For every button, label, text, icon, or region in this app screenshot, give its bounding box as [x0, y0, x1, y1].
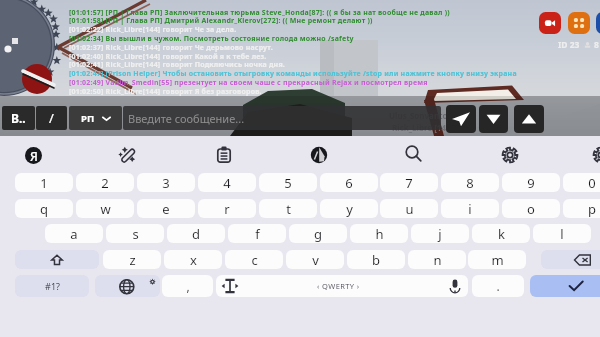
- staticText: r: [224, 200, 230, 218]
- button[interactable]: Введите сообщение...: [123, 106, 441, 130]
- button[interactable]: o: [502, 199, 560, 218]
- button[interactable]: Space: [216, 275, 468, 297]
- button[interactable]: 7: [380, 173, 438, 192]
- button[interactable]: 5: [259, 173, 317, 192]
- button[interactable]: m: [468, 250, 526, 269]
- button[interactable]: Scroll up: [514, 105, 544, 133]
- button[interactable]: n: [408, 250, 466, 269]
- button[interactable]: 2: [76, 173, 134, 192]
- button[interactable]: l: [533, 224, 591, 243]
- button[interactable]: g: [289, 224, 347, 243]
- staticText: d: [192, 225, 200, 243]
- staticText: f: [255, 225, 260, 243]
- staticText: n: [433, 251, 442, 269]
- button[interactable]: i: [441, 199, 499, 218]
- button[interactable]: 4: [198, 173, 256, 192]
- staticText: 9: [527, 174, 535, 192]
- staticText: 5: [284, 174, 292, 192]
- button[interactable]: Yandex keyboard: [17, 139, 49, 171]
- button[interactable]: Clipboard: [208, 139, 240, 171]
- button[interactable]: f: [228, 224, 286, 243]
- staticText: o: [527, 200, 535, 218]
- button[interactable]: Menu: [568, 12, 590, 34]
- button[interactable]: 6: [320, 173, 378, 192]
- button[interactable]: q: [15, 199, 73, 218]
- staticText: #1?: [45, 280, 60, 292]
- staticText: u: [405, 200, 414, 218]
- button[interactable]: Enter: [530, 275, 600, 297]
- staticText: [01:01:57] [РП | Глава РП] Заключительна…: [69, 8, 450, 18]
- button[interactable]: Scroll down: [479, 105, 508, 133]
- button[interactable]: u: [380, 199, 438, 218]
- staticText: [01:02:47] [Prison Helper] Чтобы останов…: [69, 69, 517, 79]
- button[interactable]: e: [137, 199, 195, 218]
- staticText: t: [286, 200, 291, 218]
- staticText: [01:02:40] Rick_Libre[144] говорит Какой…: [69, 52, 267, 62]
- button[interactable]: j: [411, 224, 469, 243]
- button[interactable]: Alice assistant: [303, 139, 335, 171]
- button[interactable]: k: [472, 224, 530, 243]
- staticText: [01:02:22] Rick_Libre[144] говорит Че за…: [69, 25, 237, 35]
- button[interactable]: 9: [502, 173, 560, 192]
- button[interactable]: s: [106, 224, 164, 243]
- button[interactable]: 1: [15, 173, 73, 192]
- button[interactable]: t: [259, 199, 317, 218]
- staticText: c: [251, 251, 258, 269]
- staticText: [01:02:50] Rick_Libre[144] говорит Я без…: [69, 87, 262, 97]
- button[interactable]: /: [36, 106, 67, 130]
- staticText: e: [162, 200, 170, 218]
- button[interactable]: b: [347, 250, 405, 269]
- button[interactable]: Change language: [95, 275, 160, 297]
- button[interactable]: Shift: [15, 250, 99, 269]
- button[interactable]: 8: [441, 173, 499, 192]
- staticText: v: [312, 251, 319, 269]
- button[interactable]: Settings: [494, 139, 526, 171]
- button[interactable]: r: [198, 199, 256, 218]
- staticText: Rick_Libre [144]: [392, 122, 454, 133]
- staticText: w: [100, 200, 111, 218]
- staticText: g: [314, 225, 322, 243]
- staticText: k: [498, 225, 505, 243]
- staticText: ,: [186, 278, 190, 294]
- staticText: a: [70, 225, 78, 243]
- button[interactable]: В..: [2, 106, 35, 130]
- button[interactable]: 3: [137, 173, 195, 192]
- button[interactable]: c: [225, 250, 283, 269]
- button[interactable]: Send: [446, 105, 476, 133]
- button[interactable]: Magic wand: [111, 139, 143, 171]
- staticText: j: [438, 225, 442, 243]
- staticText: y: [346, 200, 353, 218]
- button[interactable]: y: [320, 199, 378, 218]
- button[interactable]: ,: [162, 275, 213, 297]
- button[interactable]: a: [45, 224, 103, 243]
- button[interactable]: РП: [69, 106, 122, 130]
- button[interactable]: More: [585, 139, 600, 171]
- staticText: b: [372, 251, 380, 269]
- staticText: q: [40, 200, 48, 218]
- staticText: z: [129, 251, 136, 269]
- staticText: i: [468, 200, 472, 218]
- button[interactable]: w: [76, 199, 134, 218]
- button[interactable]: .: [472, 275, 524, 297]
- staticText: p: [588, 200, 596, 218]
- staticText: 1: [40, 174, 48, 192]
- button[interactable]: Search: [397, 137, 429, 169]
- button[interactable]: x: [164, 250, 222, 269]
- staticText: 0: [588, 174, 596, 192]
- button[interactable]: Backspace: [541, 250, 600, 269]
- button[interactable]: Video: [539, 12, 561, 34]
- button[interactable]: d: [167, 224, 225, 243]
- staticText: 8: [466, 174, 474, 192]
- staticText: РП: [81, 112, 95, 125]
- button[interactable]: v: [286, 250, 344, 269]
- staticText: 8: [594, 39, 599, 51]
- staticText: 2: [101, 174, 109, 192]
- button[interactable]: More: [596, 12, 600, 34]
- staticText: s: [132, 225, 139, 243]
- button[interactable]: 0: [563, 173, 600, 192]
- button[interactable]: p: [563, 199, 600, 218]
- button[interactable]: z: [103, 250, 161, 269]
- button[interactable]: #1?: [15, 275, 89, 297]
- staticText: [01:02:34] Вы вышли в чужом. Посмотреть …: [69, 34, 354, 44]
- button[interactable]: h: [350, 224, 408, 243]
